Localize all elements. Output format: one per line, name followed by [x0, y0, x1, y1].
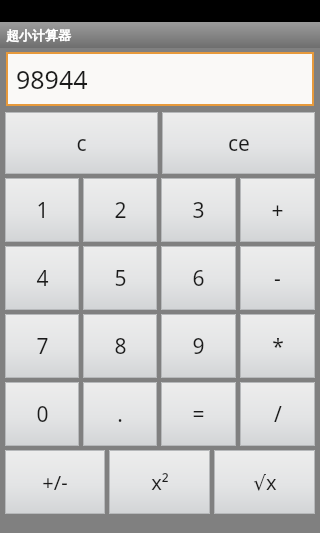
staticText: 5 [114, 264, 127, 293]
button[interactable]: √x [214, 450, 315, 514]
button[interactable]: . [83, 382, 157, 446]
button[interactable]: 3 [161, 178, 236, 242]
button[interactable]: + [240, 178, 315, 242]
staticText: 3 [192, 196, 205, 225]
staticText: x² [151, 469, 169, 496]
staticText: 9 [192, 332, 205, 361]
button[interactable]: 6 [161, 246, 236, 310]
button[interactable]: = [161, 382, 236, 446]
staticText: 1 [36, 196, 49, 225]
staticText: 6 [192, 264, 205, 293]
button[interactable]: 7 [5, 314, 79, 378]
staticText: . [117, 400, 123, 429]
staticText: 0 [36, 400, 49, 429]
button[interactable]: 2 [83, 178, 157, 242]
staticText: 4 [36, 264, 49, 293]
staticText: c [76, 129, 87, 158]
button[interactable]: 9 [161, 314, 236, 378]
button[interactable]: 0 [5, 382, 79, 446]
button[interactable]: 8 [83, 314, 157, 378]
button[interactable]: c [5, 112, 158, 174]
staticText: 98944 [16, 62, 88, 96]
staticText: = [192, 400, 205, 429]
staticText: 7 [36, 332, 49, 361]
staticText: 2 [114, 196, 127, 225]
staticText: / [274, 400, 282, 429]
staticText: √x [253, 469, 277, 496]
staticText: ce [228, 129, 250, 158]
button[interactable]: - [240, 246, 315, 310]
button[interactable]: x² [109, 450, 210, 514]
staticText: 8 [114, 332, 127, 361]
button[interactable]: 1 [5, 178, 79, 242]
button[interactable]: 98944 [8, 54, 312, 104]
staticText: - [274, 264, 281, 293]
staticText: * [272, 332, 284, 361]
button[interactable]: 5 [83, 246, 157, 310]
button[interactable]: * [240, 314, 315, 378]
button[interactable]: 4 [5, 246, 79, 310]
staticText: + [271, 196, 284, 225]
staticText: +/- [42, 469, 68, 496]
staticText: 超小计算器 [6, 27, 71, 43]
button[interactable]: / [240, 382, 315, 446]
button[interactable]: ce [162, 112, 315, 174]
button[interactable]: +/- [5, 450, 105, 514]
